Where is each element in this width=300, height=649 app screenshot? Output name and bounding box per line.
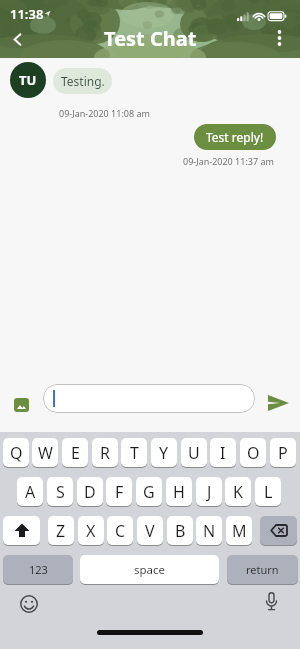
staticText: 123 [29, 562, 48, 577]
button[interactable]: Test reply! [194, 124, 276, 150]
button[interactable]: A [17, 477, 43, 506]
staticText: Z [56, 520, 66, 542]
button[interactable]: I [210, 438, 236, 467]
staticText: Y [159, 442, 169, 464]
button[interactable] [18, 593, 40, 615]
button[interactable]: F [106, 477, 132, 506]
staticText: W [38, 442, 53, 464]
button[interactable]: Z [48, 516, 74, 545]
staticText: M [232, 520, 247, 542]
staticText: Testing. [61, 73, 105, 89]
staticText: H [173, 481, 185, 503]
button[interactable]: L [255, 477, 281, 506]
staticText: T [130, 442, 139, 464]
button[interactable] [264, 392, 292, 414]
button[interactable]: return [227, 555, 298, 584]
staticText: F [115, 481, 124, 503]
staticText: space [134, 562, 166, 578]
staticText: U [188, 442, 200, 464]
staticText: R [100, 442, 110, 464]
staticText: B [175, 520, 186, 542]
staticText: K [233, 481, 243, 503]
button[interactable] [266, 24, 292, 52]
button[interactable] [3, 516, 40, 545]
staticText: X [86, 520, 96, 542]
staticText: return [246, 562, 279, 577]
staticText: 09-Jan-2020 11:08 am [59, 107, 150, 119]
button[interactable] [4, 26, 30, 52]
button[interactable] [10, 394, 34, 416]
button[interactable]: K [225, 477, 251, 506]
button[interactable]: M [226, 516, 252, 545]
staticText: I [220, 442, 226, 464]
staticText: D [84, 481, 96, 503]
button[interactable]: O [240, 438, 266, 467]
button[interactable]: Q [3, 438, 29, 467]
staticText: E [71, 442, 80, 464]
button[interactable]: H [166, 477, 192, 506]
button[interactable]: P [270, 438, 296, 467]
button[interactable] [260, 516, 297, 545]
button[interactable]: U [181, 438, 207, 467]
button[interactable]: N [196, 516, 222, 545]
button[interactable]: space [80, 555, 219, 584]
staticText: V [145, 520, 155, 542]
button[interactable]: X [78, 516, 104, 545]
button[interactable] [260, 591, 282, 613]
staticText: Test Chat [104, 25, 197, 52]
staticText: O [247, 442, 260, 464]
button[interactable]: E [62, 438, 88, 467]
button[interactable]: V [137, 516, 163, 545]
button[interactable]: Testing. [53, 68, 112, 94]
button[interactable]: Y [151, 438, 177, 467]
staticText: Q [10, 442, 23, 464]
staticText: A [25, 481, 36, 503]
staticText: 09-Jan-2020 11:37 am [183, 155, 274, 167]
staticText: L [264, 481, 273, 503]
button[interactable]: D [77, 477, 103, 506]
button[interactable]: C [107, 516, 133, 545]
staticText: S [56, 481, 65, 503]
staticText: Test reply! [206, 129, 264, 145]
button[interactable]: G [136, 477, 162, 506]
button[interactable]: S [47, 477, 73, 506]
staticText: P [278, 442, 288, 464]
button[interactable]: W [32, 438, 58, 467]
staticText: G [143, 481, 155, 503]
button[interactable]: 123 [3, 555, 73, 584]
button[interactable]: T [121, 438, 147, 467]
button[interactable]: R [92, 438, 118, 467]
button[interactable]: J [196, 477, 222, 506]
button[interactable] [43, 384, 255, 413]
staticText: C [115, 520, 126, 542]
staticText: 11:38 [10, 5, 44, 23]
button[interactable]: B [167, 516, 193, 545]
staticText: N [203, 520, 216, 542]
staticText: TU [19, 71, 37, 89]
staticText: J [207, 481, 212, 503]
